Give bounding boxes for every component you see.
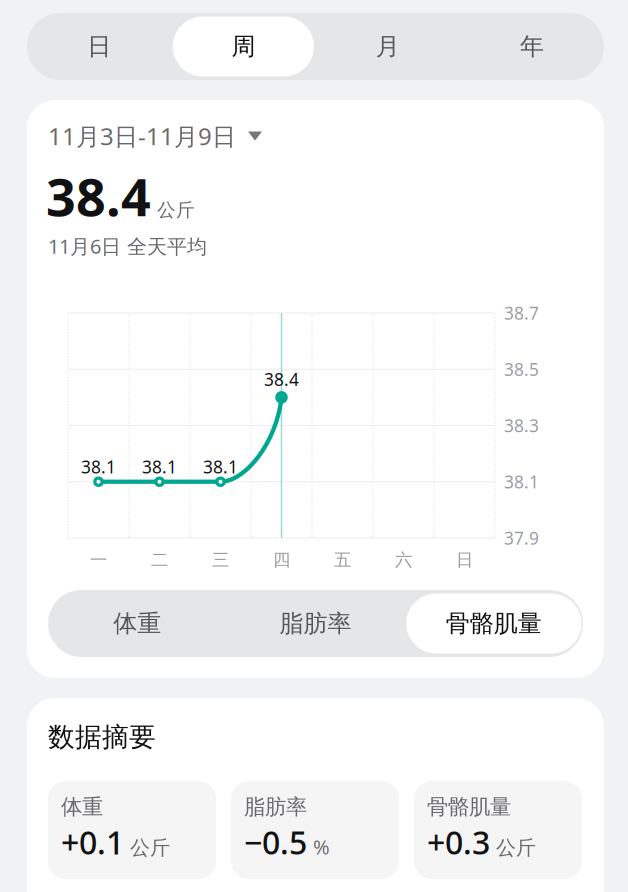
- staticText: 38.1: [203, 455, 238, 478]
- staticText: 体重: [113, 609, 161, 638]
- staticText: +0.1: [61, 821, 124, 863]
- button[interactable]: 年: [460, 13, 604, 80]
- button[interactable]: 日: [27, 13, 171, 80]
- staticText: 周: [231, 32, 255, 61]
- staticText: 38.3: [504, 414, 539, 437]
- staticText: 37.9: [504, 526, 539, 549]
- staticText: 11月3日-11月9日: [48, 120, 236, 152]
- staticText: 38.1: [81, 455, 116, 478]
- staticText: 一: [90, 549, 107, 571]
- staticText: 四: [273, 549, 290, 571]
- staticText: +0.3: [427, 821, 490, 863]
- button[interactable]: 脂肪率: [231, 781, 399, 879]
- staticText: 38.4: [46, 161, 151, 231]
- staticText: 日: [87, 32, 111, 61]
- button[interactable]: 骨骼肌量: [414, 781, 582, 879]
- staticText: 二: [151, 549, 168, 571]
- staticText: 38.5: [504, 358, 539, 381]
- staticText: 年: [520, 32, 544, 61]
- staticText: 38.1: [504, 470, 539, 493]
- staticText: %: [313, 833, 330, 860]
- button[interactable]: 脂肪率: [226, 590, 405, 657]
- staticText: 11月6日 全天平均: [48, 233, 207, 259]
- staticText: 五: [334, 549, 351, 571]
- staticText: 公斤: [130, 835, 170, 860]
- button[interactable]: 月: [315, 13, 460, 80]
- staticText: 38.7: [504, 301, 539, 324]
- staticText: 日: [456, 549, 473, 571]
- button[interactable]: 11月3日-11月9日: [48, 121, 368, 151]
- staticText: 脂肪率: [279, 609, 351, 638]
- staticText: −0.5: [244, 821, 307, 863]
- staticText: 三: [212, 549, 229, 571]
- staticText: 公斤: [157, 198, 195, 221]
- staticText: 骨骼肌量: [427, 794, 511, 820]
- staticText: 脂肪率: [244, 794, 307, 820]
- staticText: 六: [395, 549, 412, 571]
- button[interactable]: 骨骼肌量: [405, 590, 583, 657]
- staticText: 38.4: [264, 368, 299, 391]
- staticText: 体重: [61, 794, 103, 820]
- staticText: 骨骼肌量: [446, 609, 542, 638]
- staticText: 38.1: [142, 455, 177, 478]
- staticText: 月: [376, 32, 400, 61]
- button[interactable]: 体重: [48, 590, 226, 657]
- staticText: 数据摘要: [48, 721, 156, 753]
- button[interactable]: 体重: [48, 781, 216, 879]
- staticText: 公斤: [496, 835, 536, 860]
- button[interactable]: 周: [171, 13, 315, 80]
